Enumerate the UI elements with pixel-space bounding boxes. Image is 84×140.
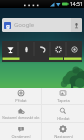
button[interactable]: Gallery bbox=[2, 41, 18, 58]
staticText: Tapeta bbox=[57, 98, 70, 103]
staticText: Hledat bbox=[57, 116, 70, 121]
staticText: Nastavení bbox=[54, 134, 73, 139]
button[interactable]: Nastavení domovské obr. bbox=[0, 105, 41, 122]
button[interactable]: Oznámení bbox=[0, 123, 41, 140]
staticText: Google bbox=[14, 21, 35, 29]
button[interactable]: Voice search bbox=[71, 18, 82, 32]
staticText: 14:51 bbox=[70, 1, 83, 8]
button[interactable]: Camera bbox=[66, 41, 82, 58]
button[interactable]: Nastavení bbox=[42, 123, 84, 140]
staticText: g bbox=[6, 22, 10, 29]
button[interactable]: g bbox=[2, 18, 82, 32]
staticText: Přidat bbox=[15, 98, 27, 103]
button[interactable]: Přidat bbox=[0, 88, 41, 104]
button[interactable]: Tapeta bbox=[42, 88, 84, 104]
button[interactable]: Hledat bbox=[42, 105, 84, 122]
staticText: Oznámení bbox=[11, 134, 31, 139]
button[interactable]: Apps bbox=[50, 41, 66, 58]
button[interactable]: Messaging bbox=[34, 41, 50, 58]
button[interactable]: Phone bbox=[18, 41, 34, 58]
staticText: Nastavení domovské obr. bbox=[2, 116, 40, 120]
